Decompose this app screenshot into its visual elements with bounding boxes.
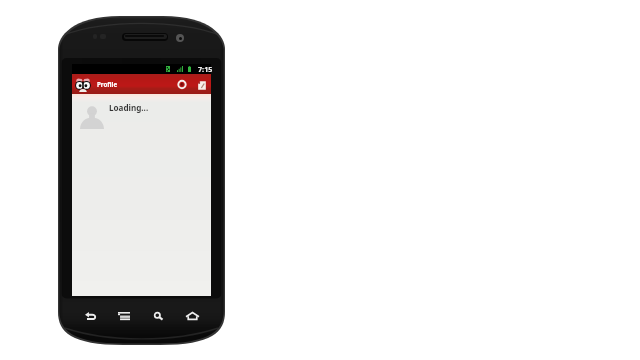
button[interactable]: Compose [192, 75, 211, 95]
button[interactable]: Menu [111, 303, 137, 329]
staticText: Loading... [109, 102, 149, 113]
button[interactable]: Home [179, 303, 205, 329]
staticText: 7:15 [198, 64, 213, 74]
button[interactable]: App home [72, 74, 93, 94]
button[interactable]: Back [77, 303, 103, 329]
staticText: Profile [97, 80, 118, 88]
button[interactable]: Search [145, 303, 171, 329]
button[interactable]: Refresh [172, 74, 191, 94]
